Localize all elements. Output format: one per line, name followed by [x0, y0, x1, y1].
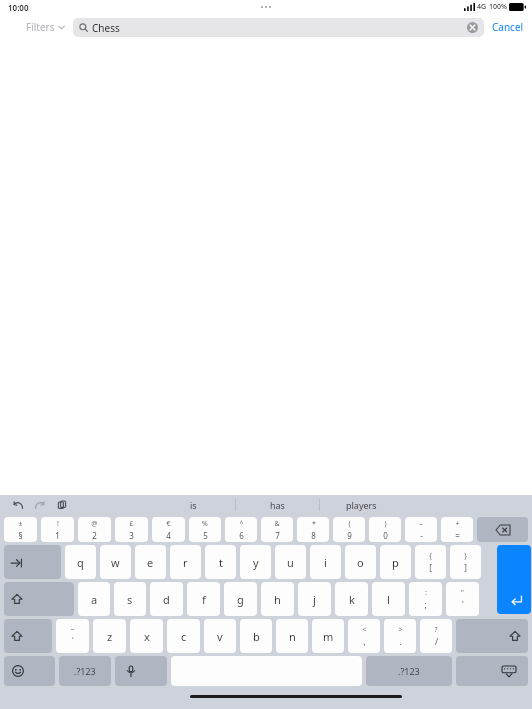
button[interactable]: players — [320, 495, 403, 515]
staticText: > — [398, 625, 403, 635]
button[interactable]: j — [298, 582, 331, 616]
button[interactable]: z — [93, 619, 126, 653]
button[interactable]: Dictate — [115, 656, 167, 686]
button[interactable]: Chess — [73, 18, 484, 37]
button[interactable]: ~ — [56, 619, 89, 653]
staticText: 4G — [477, 2, 487, 12]
staticText: a — [91, 592, 98, 607]
button[interactable]: m — [312, 619, 344, 653]
button[interactable]: p — [380, 545, 411, 579]
button[interactable]: Return — [497, 545, 531, 614]
button[interactable]: f — [187, 582, 220, 616]
staticText: d — [163, 592, 170, 607]
staticText: / — [435, 636, 438, 647]
staticText: players — [346, 499, 377, 511]
staticText: , — [363, 636, 366, 647]
staticText: 8 — [311, 530, 316, 541]
button[interactable]: c — [167, 619, 200, 653]
button[interactable]: l — [372, 582, 405, 616]
button[interactable]: Numbers and symbols — [366, 656, 452, 686]
button[interactable]: % — [189, 517, 221, 542]
staticText: ; — [424, 599, 427, 610]
button[interactable]: Undo — [11, 498, 25, 512]
button[interactable]: s — [114, 582, 146, 616]
button[interactable]: d — [150, 582, 183, 616]
button[interactable]: h — [261, 582, 294, 616]
button[interactable]: i — [310, 545, 341, 579]
button[interactable]: a — [78, 582, 110, 616]
button[interactable]: k — [335, 582, 368, 616]
button[interactable]: – — [405, 517, 437, 542]
staticText: is — [190, 499, 197, 511]
button[interactable]: u — [275, 545, 306, 579]
button[interactable]: * — [297, 517, 329, 542]
button[interactable]: Emoji — [4, 656, 55, 686]
staticText: k — [349, 592, 355, 607]
button[interactable]: q — [65, 545, 96, 579]
staticText: g — [237, 592, 244, 607]
button[interactable]: w — [100, 545, 131, 579]
button[interactable]: v — [204, 619, 236, 653]
button[interactable]: > — [384, 619, 416, 653]
button[interactable]: @ — [78, 517, 111, 542]
button[interactable]: e — [135, 545, 166, 579]
staticText: t — [219, 555, 223, 570]
button[interactable]: Caps lock — [4, 582, 74, 616]
button[interactable]: £ — [115, 517, 148, 542]
staticText: ] — [464, 562, 467, 573]
button[interactable]: n — [276, 619, 308, 653]
staticText: ^ — [239, 519, 244, 529]
button[interactable]: : — [409, 582, 442, 616]
staticText: w — [111, 555, 120, 570]
button[interactable]: Clear text — [467, 22, 478, 33]
staticText: . — [399, 636, 402, 647]
staticText: y — [253, 555, 259, 570]
button[interactable]: Shift — [456, 619, 528, 653]
staticText: = — [455, 530, 460, 541]
button[interactable]: is — [152, 495, 235, 515]
staticText: c — [181, 629, 187, 644]
staticText: * — [312, 519, 316, 529]
staticText: } — [464, 551, 467, 561]
button[interactable]: + — [441, 517, 473, 542]
button[interactable]: ± — [4, 517, 37, 542]
button[interactable]: Numbers and symbols — [59, 656, 111, 686]
staticText: m — [323, 629, 334, 644]
button[interactable]: Shift — [4, 619, 52, 653]
staticText: i — [324, 555, 327, 570]
button[interactable]: Dismiss keyboard — [456, 656, 528, 686]
button[interactable]: g — [224, 582, 257, 616]
button[interactable]: Cancel — [484, 20, 532, 34]
button[interactable]: ? — [420, 619, 452, 653]
button[interactable]: Tab — [4, 545, 61, 579]
button[interactable]: y — [240, 545, 271, 579]
button[interactable]: Backspace — [477, 517, 528, 542]
staticText: ' — [462, 599, 464, 610]
button[interactable]: ( — [333, 517, 365, 542]
staticText: v — [217, 629, 223, 644]
button[interactable]: r — [170, 545, 201, 579]
button[interactable]: Redo — [33, 498, 47, 512]
staticText: 100% — [489, 2, 507, 12]
button[interactable]: o — [345, 545, 376, 579]
button[interactable]: b — [240, 619, 272, 653]
staticText: & — [274, 519, 280, 529]
button[interactable]: ^ — [225, 517, 257, 542]
staticText: < — [362, 625, 367, 635]
button[interactable]: € — [152, 517, 185, 542]
button[interactable]: t — [205, 545, 236, 579]
button[interactable]: ) — [369, 517, 401, 542]
button[interactable]: has — [236, 495, 319, 515]
button[interactable]: ! — [41, 517, 74, 542]
button[interactable]: } — [450, 545, 481, 579]
staticText: ! — [57, 519, 59, 529]
button[interactable]: < — [348, 619, 380, 653]
button[interactable]: Paste — [55, 498, 69, 512]
button[interactable]: " — [446, 582, 479, 616]
button[interactable]: & — [261, 517, 293, 542]
staticText: o — [357, 555, 364, 570]
button[interactable]: Filters — [26, 20, 65, 34]
button[interactable]: { — [415, 545, 446, 579]
button[interactable]: x — [130, 619, 163, 653]
